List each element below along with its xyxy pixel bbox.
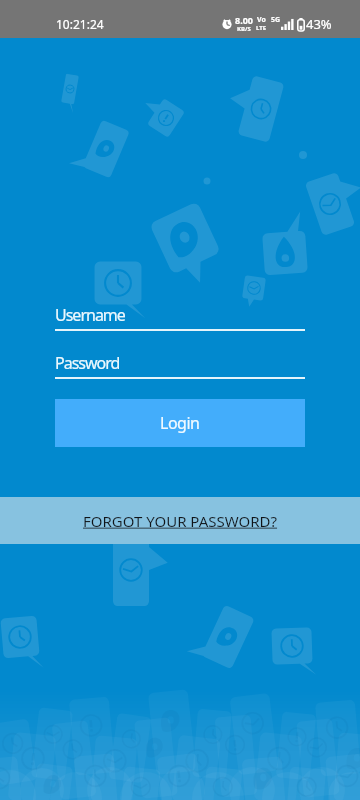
staticText: KB/S bbox=[237, 25, 251, 33]
other: Signal bbox=[281, 19, 294, 30]
staticText: LTE bbox=[256, 24, 267, 32]
other: Alarm bbox=[222, 19, 232, 29]
staticText: Password bbox=[55, 352, 120, 374]
other: Battery bbox=[297, 18, 305, 31]
staticText: Vo bbox=[257, 15, 266, 25]
staticText: Login bbox=[160, 412, 200, 434]
staticText: 5G bbox=[271, 15, 281, 25]
staticText: 8.00 bbox=[235, 14, 253, 26]
staticText: 43% bbox=[306, 15, 332, 33]
button[interactable]: FORGOT YOUR PASSWORD? bbox=[0, 497, 360, 544]
staticText: 10:21:24 bbox=[56, 16, 104, 32]
button[interactable]: Login bbox=[55, 399, 305, 447]
staticText: FORGOT YOUR PASSWORD? bbox=[83, 511, 278, 531]
staticText: Username bbox=[55, 304, 125, 326]
